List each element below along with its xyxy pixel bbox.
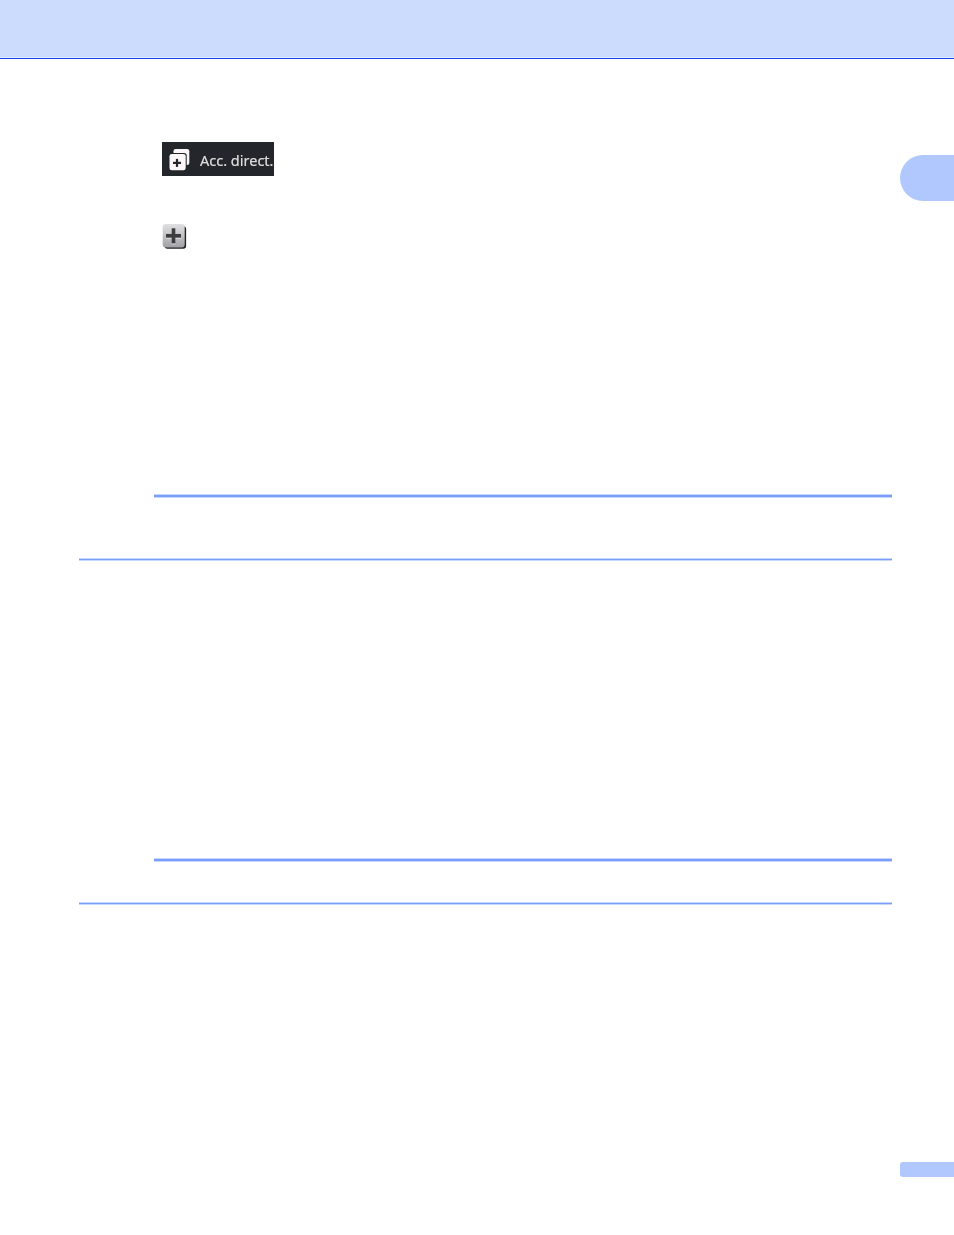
- button[interactable]: Add shortcut: [162, 224, 187, 250]
- button[interactable]: Page index tab: [900, 1162, 954, 1177]
- button[interactable]: Chapter index tab: [900, 155, 954, 201]
- button[interactable]: Acc. direct.: [162, 142, 274, 176]
- staticText: Acc. direct.: [200, 150, 274, 170]
